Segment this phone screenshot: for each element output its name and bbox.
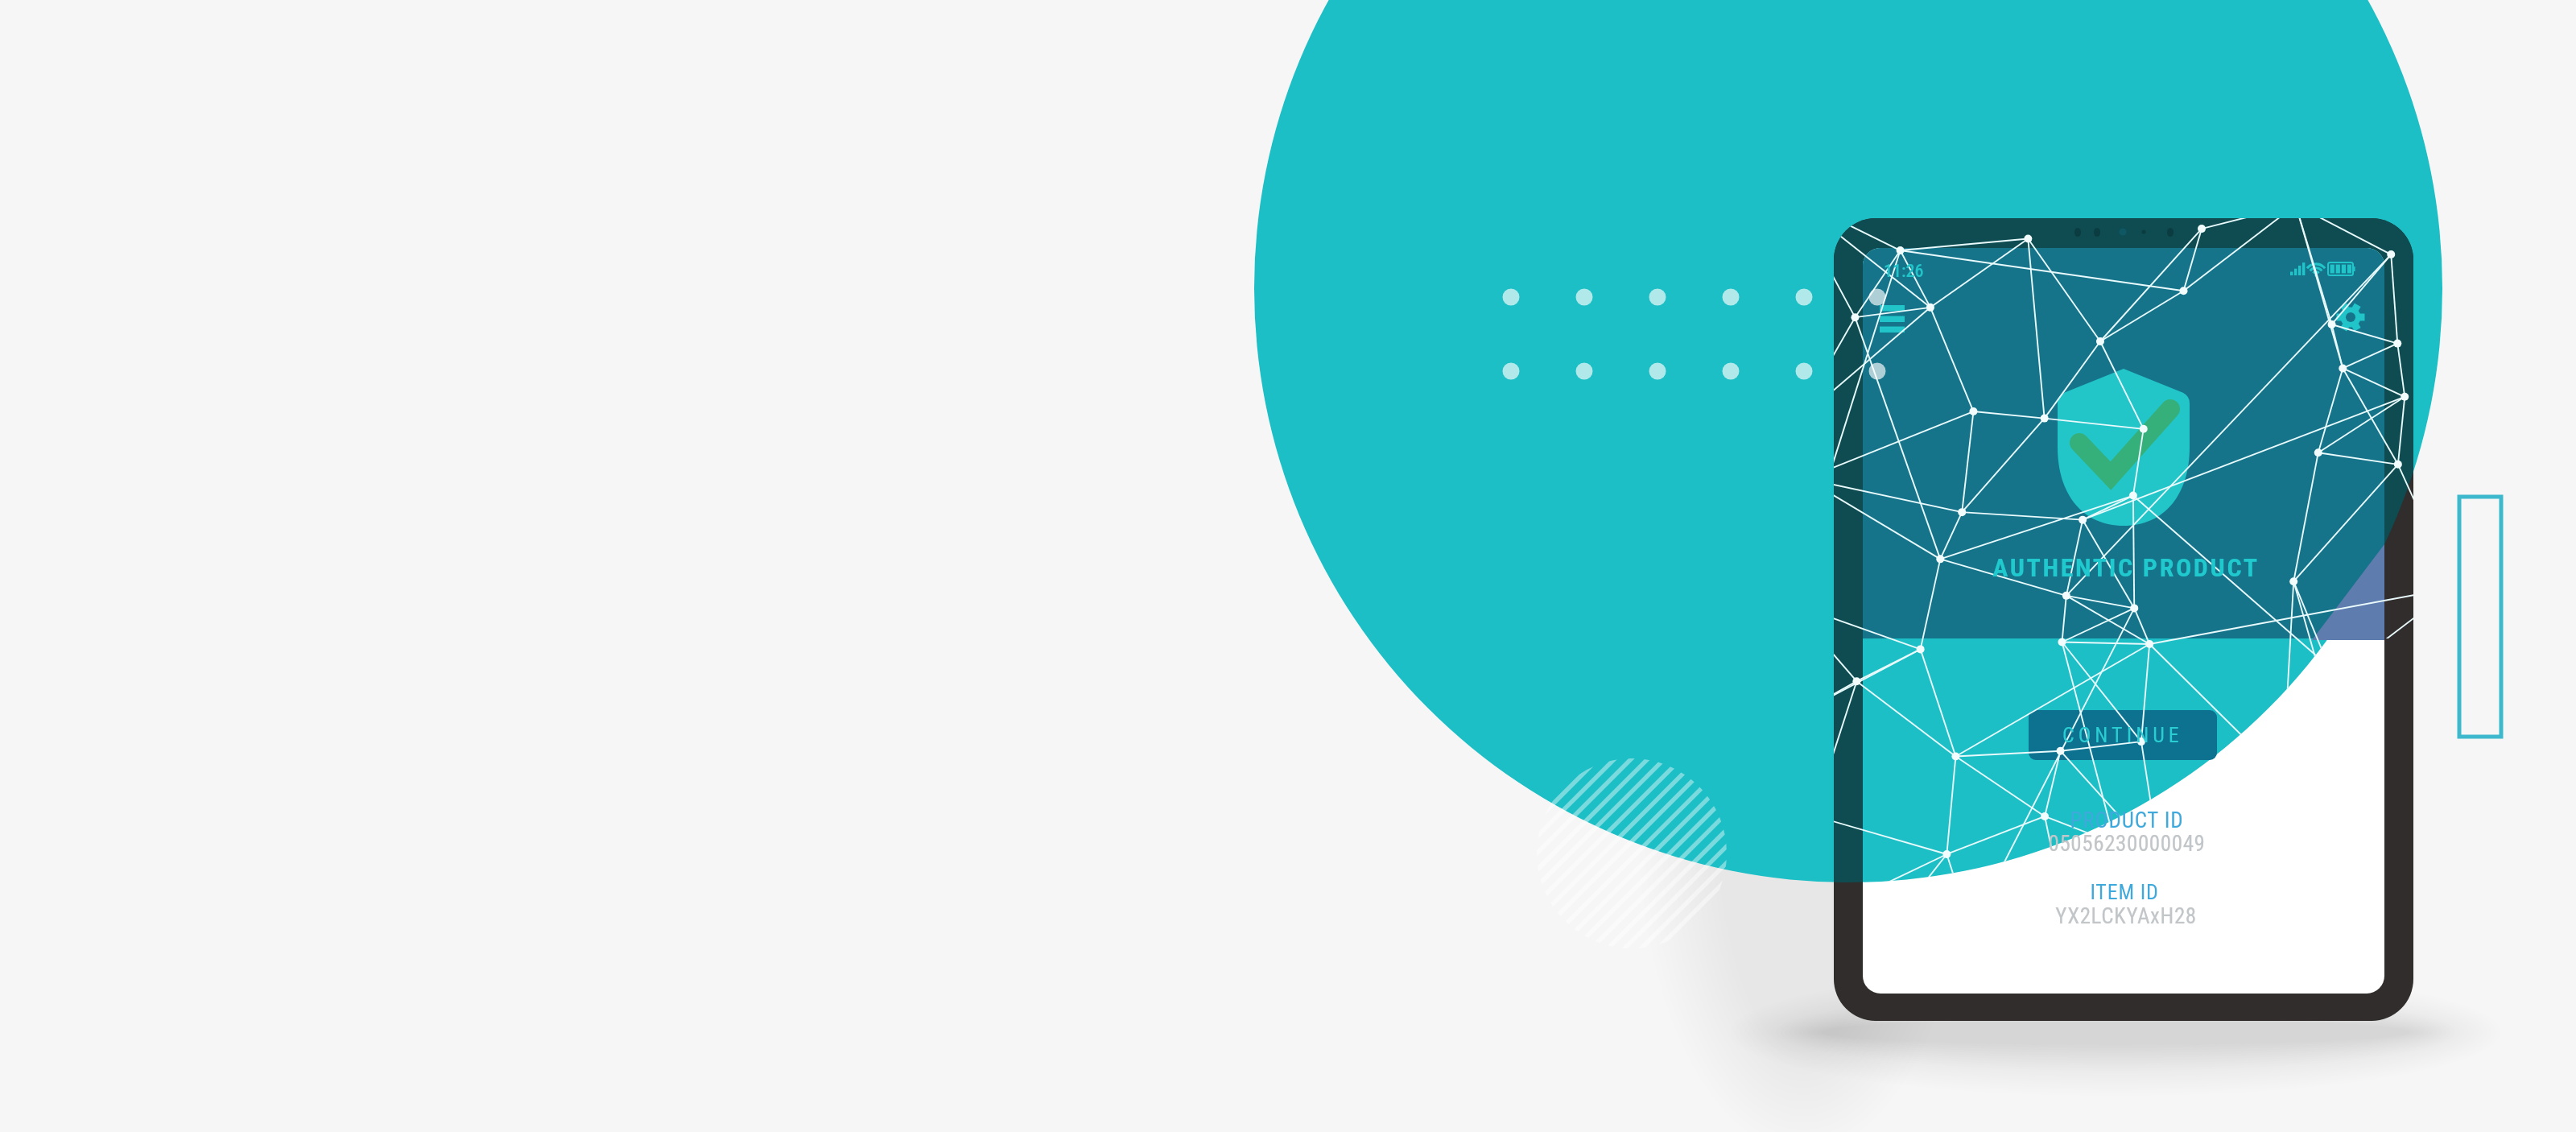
staticText: ITEM ID — [1786, 880, 2462, 1132]
staticText: 11:26 — [1884, 261, 1924, 282]
staticText: CONTINUE — [2062, 723, 2183, 747]
button[interactable]: CONTINUE — [2029, 710, 2217, 760]
button[interactable]: Open navigation menu — [1874, 299, 1911, 338]
staticText: AUTHENTIC PRODUCT — [1788, 552, 2464, 1132]
staticText: YX2LCKYAxH28 — [1788, 903, 2464, 1132]
staticText: PRODUCT ID — [1789, 808, 2465, 1132]
button[interactable]: Settings — [2333, 300, 2370, 337]
staticText: 05056230000049 — [1789, 831, 2465, 1132]
